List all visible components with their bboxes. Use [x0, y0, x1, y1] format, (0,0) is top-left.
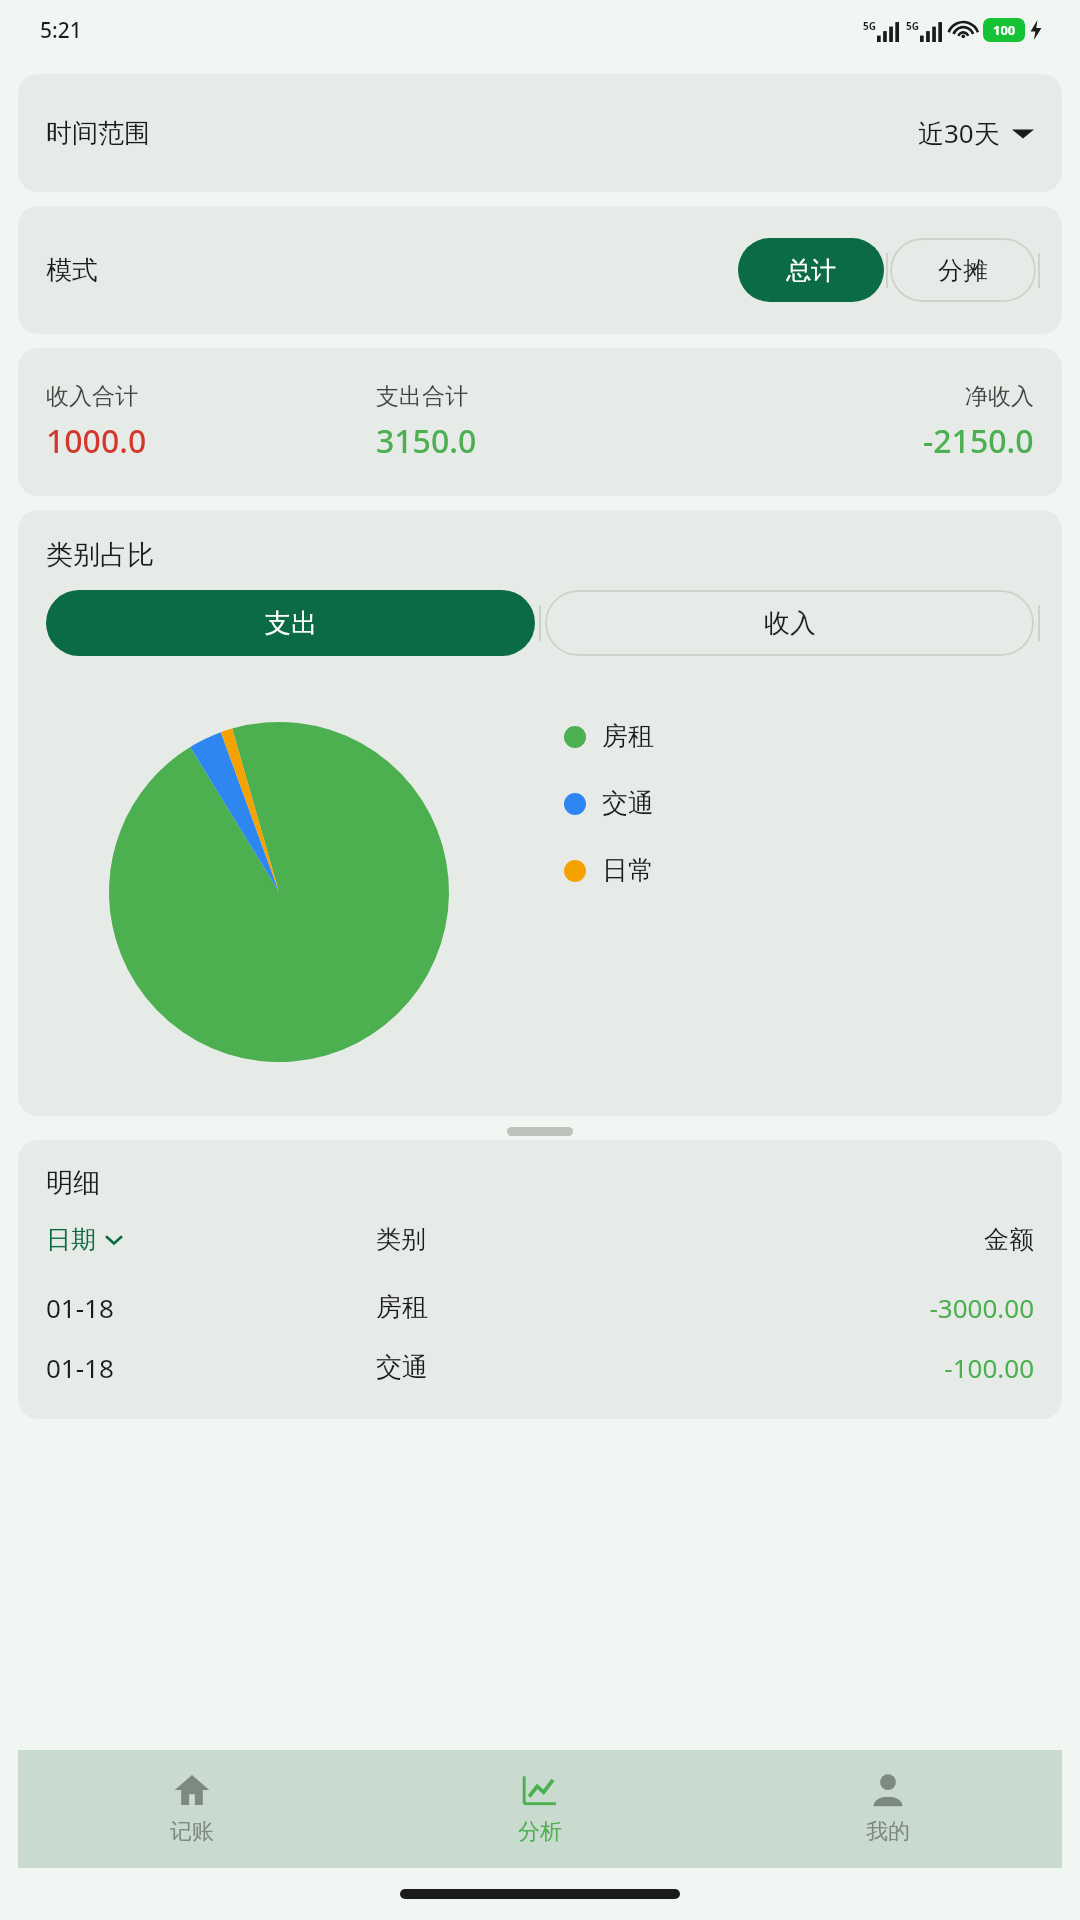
button[interactable]: 总计: [738, 238, 884, 302]
button[interactable]: 我的: [714, 1760, 1062, 1858]
staticText: 明细: [46, 1166, 100, 1200]
staticText: 支出合计: [376, 382, 468, 411]
staticText: 日常: [602, 854, 654, 887]
staticText: 我的: [866, 1818, 910, 1846]
staticText: 房租: [376, 1291, 705, 1324]
button[interactable]: 收入: [545, 590, 1034, 656]
button[interactable]: 记账: [18, 1760, 366, 1858]
staticText: 交通: [602, 787, 654, 820]
staticText: -2150.0: [923, 419, 1034, 463]
staticText: 类别: [376, 1224, 705, 1255]
staticText: 总计: [786, 255, 836, 286]
staticText: 交通: [376, 1351, 705, 1384]
button[interactable]: 日期: [46, 1224, 376, 1255]
staticText: 支出: [265, 607, 317, 640]
staticText: 近30天: [918, 115, 1000, 151]
staticText: 收入: [764, 607, 816, 640]
staticText: 5:21: [40, 16, 82, 45]
button[interactable]: 01-18: [18, 1337, 1062, 1397]
staticText: 类别占比: [46, 538, 154, 572]
button[interactable]: 分析: [366, 1760, 714, 1858]
staticText: 净收入: [965, 382, 1034, 411]
staticText: 3150.0: [376, 419, 477, 463]
staticText: 01-18: [46, 1290, 376, 1325]
staticText: 100: [993, 21, 1016, 39]
button[interactable]: 时间范围: [18, 74, 1062, 192]
staticText: 1000.0: [46, 419, 147, 463]
staticText: 5G: [863, 19, 876, 33]
staticText: 记账: [170, 1818, 214, 1846]
staticText: 分摊: [938, 255, 988, 286]
staticText: 收入合计: [46, 382, 138, 411]
staticText: 金额: [705, 1224, 1034, 1255]
button[interactable]: 分摊: [890, 238, 1036, 302]
staticText: 时间范围: [46, 117, 150, 150]
button[interactable]: 01-18: [18, 1277, 1062, 1337]
staticText: 分析: [518, 1818, 562, 1846]
staticText: 房租: [602, 720, 654, 753]
staticText: 日期: [46, 1224, 96, 1255]
staticText: 5G: [906, 19, 919, 33]
staticText: -3000.00: [705, 1290, 1034, 1325]
staticText: 模式: [46, 254, 98, 287]
staticText: 01-18: [46, 1350, 376, 1385]
button[interactable]: 支出: [46, 590, 535, 656]
staticText: -100.00: [705, 1350, 1034, 1385]
